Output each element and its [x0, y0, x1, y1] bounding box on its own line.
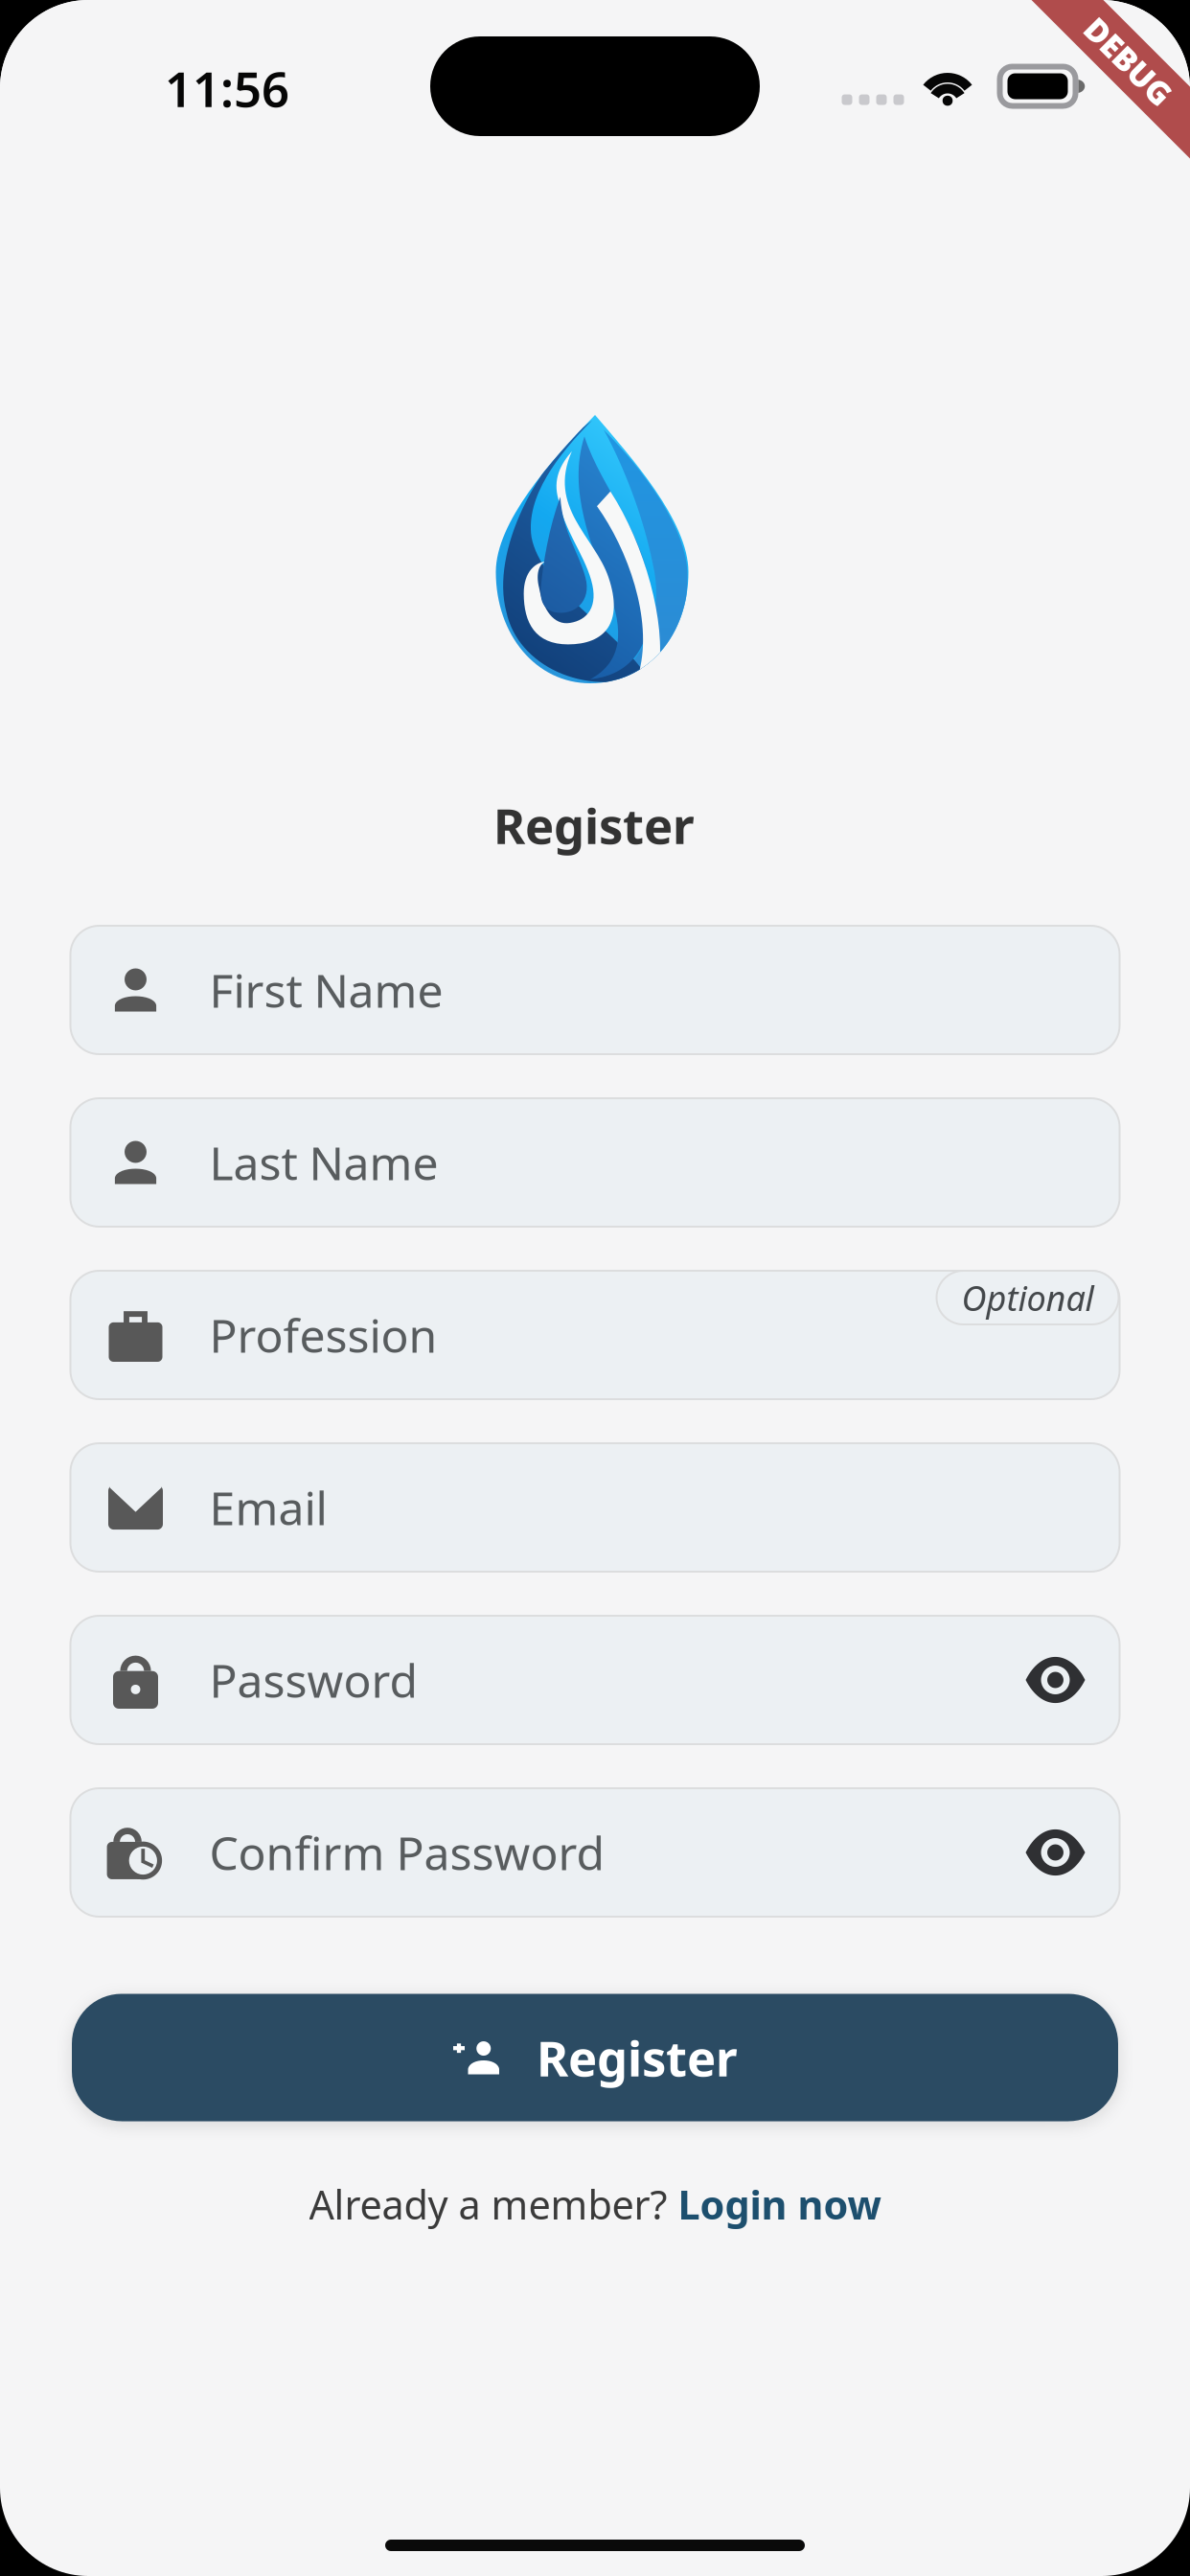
button[interactable]: Profession [70, 1271, 1120, 1399]
staticText: Email [209, 1477, 327, 1538]
staticText: 11:56 [165, 56, 289, 120]
staticText: Login now [678, 2178, 881, 2231]
staticText: Password [209, 1649, 418, 1710]
button[interactable]: Last Name [70, 1098, 1120, 1227]
staticText: Already a member? [309, 2178, 678, 2231]
button[interactable]: Confirm Password [70, 1788, 1120, 1917]
button[interactable]: Password [70, 1616, 1120, 1744]
staticText: Last Name [209, 1132, 438, 1193]
staticText: Optional [961, 1275, 1094, 1320]
button[interactable]: Show password [1026, 1659, 1085, 1701]
staticText: Register [537, 2025, 738, 2090]
staticText: Profession [209, 1304, 437, 1365]
button[interactable]: Email [70, 1443, 1120, 1572]
button[interactable]: Show confirm password [1026, 1832, 1085, 1873]
staticText: First Name [209, 959, 443, 1020]
button[interactable]: Register [72, 1994, 1118, 2121]
staticText: DEBUG [1074, 40, 1183, 83]
staticText: Confirm Password [209, 1822, 605, 1883]
button[interactable]: First Name [70, 926, 1120, 1054]
staticText: Register [493, 793, 695, 857]
button[interactable]: Already a member? [309, 2178, 881, 2231]
